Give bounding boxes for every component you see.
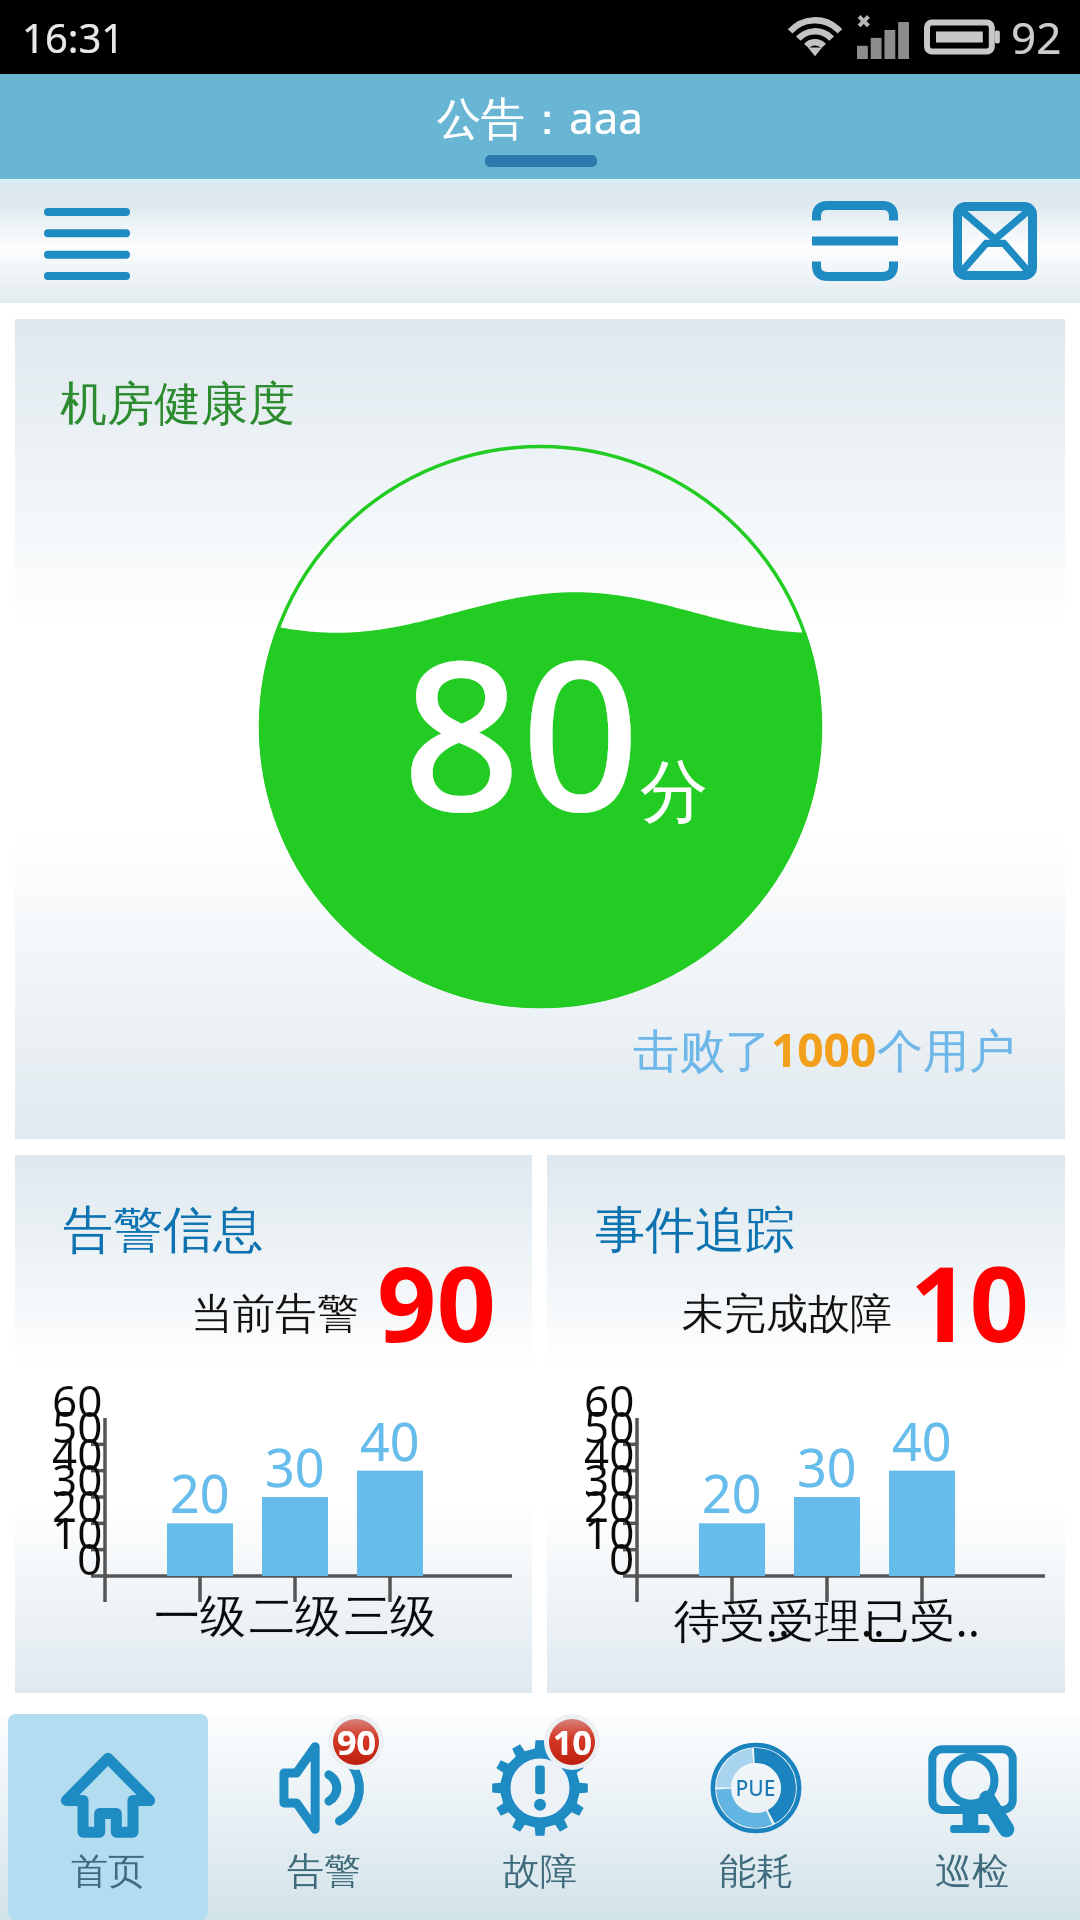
staticText: 90 (377, 1231, 496, 1373)
button[interactable]: 告警信息 (15, 1155, 532, 1693)
staticText: 击败了 (633, 1023, 771, 1081)
button[interactable]: 公告：aaa (0, 74, 1080, 179)
button[interactable]: 能耗 (656, 1714, 856, 1920)
button[interactable]: 告警 (224, 1714, 424, 1920)
staticText: 当前告警 (191, 1288, 359, 1341)
button[interactable]: Messages (940, 187, 1050, 295)
staticText: 10 (910, 1231, 1029, 1373)
staticText: 90 (337, 1719, 376, 1765)
staticText: 1000 (771, 1018, 877, 1081)
staticText: 16:31 (22, 10, 125, 64)
staticText: 分 (640, 750, 708, 836)
staticText: 10 (553, 1719, 592, 1765)
staticText: 告警信息 (63, 1199, 263, 1262)
staticText: 80 (402, 589, 640, 872)
staticText: 机房健康度 (60, 375, 295, 434)
button[interactable]: 首页 (8, 1714, 208, 1920)
staticText: 个用户 (877, 1023, 1015, 1081)
staticText: 告警 (287, 1848, 361, 1895)
staticText: 首页 (71, 1848, 145, 1895)
staticText: 事件追踪 (595, 1199, 795, 1262)
button[interactable]: Split view (800, 187, 910, 295)
staticText: 未完成故障 (682, 1288, 892, 1341)
button[interactable]: Menu (34, 195, 140, 287)
button[interactable]: 故障 (440, 1714, 640, 1920)
staticText: 公告：aaa (437, 87, 644, 147)
button[interactable]: 巡检 (872, 1714, 1072, 1920)
button[interactable]: 事件追踪 (547, 1155, 1065, 1693)
staticText: 92 (1011, 7, 1062, 67)
staticText: 巡检 (935, 1848, 1009, 1895)
staticText: 能耗 (719, 1848, 793, 1895)
button[interactable]: 机房健康度 (15, 319, 1065, 1139)
staticText: 故障 (503, 1848, 577, 1895)
